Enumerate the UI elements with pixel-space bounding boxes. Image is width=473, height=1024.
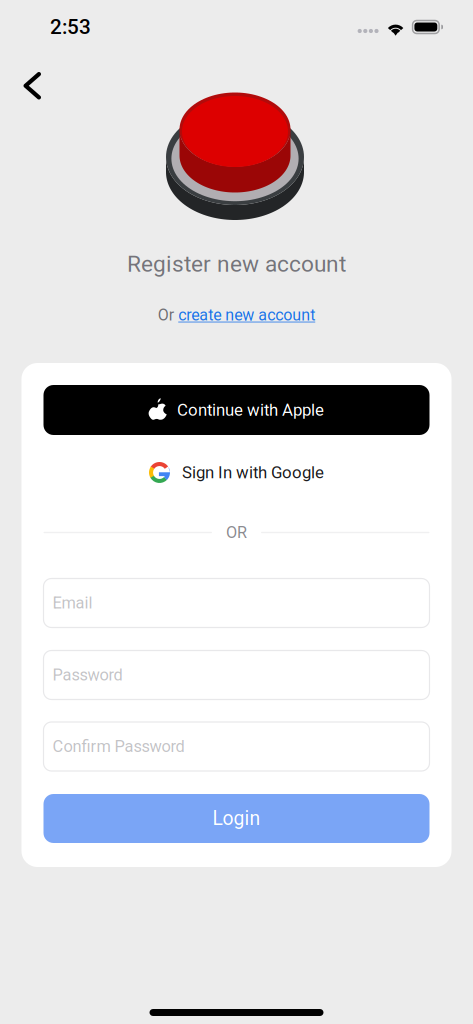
button[interactable]: Back xyxy=(11,60,53,111)
button[interactable]: Continue with Apple xyxy=(43,385,429,435)
staticText: Continue with Apple xyxy=(177,400,324,420)
staticText: Sign In with Google xyxy=(182,463,324,482)
staticText: Login xyxy=(212,807,260,830)
staticText: Email xyxy=(52,593,92,613)
staticText: OR xyxy=(226,523,247,542)
button[interactable]: Login xyxy=(43,794,429,843)
button[interactable]: Confirm Password xyxy=(43,722,429,771)
button[interactable]: Email xyxy=(43,578,429,627)
staticText: 2:53 xyxy=(50,15,91,39)
staticText: Password xyxy=(52,665,122,685)
button[interactable]: Password xyxy=(43,650,429,699)
button[interactable]: create new account xyxy=(178,306,315,324)
button[interactable]: Sign In with Google xyxy=(43,452,429,493)
staticText: Register new account xyxy=(127,251,346,277)
staticText: Confirm Password xyxy=(52,737,184,756)
staticText: create new account xyxy=(178,306,315,324)
staticText: Or xyxy=(158,306,174,324)
